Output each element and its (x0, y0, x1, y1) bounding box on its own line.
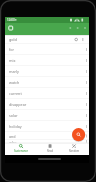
button[interactable] (72, 128, 85, 141)
staticText: and (9, 134, 16, 139)
button[interactable] (7, 26, 15, 34)
staticText: disappear (9, 102, 27, 107)
staticText: marly (9, 69, 19, 74)
staticText: for (9, 47, 15, 52)
staticText: holiday (9, 124, 22, 129)
staticText: Random (69, 149, 80, 153)
button[interactable]: who (5, 140, 89, 143)
staticText: gold (9, 37, 17, 42)
button[interactable]: for (5, 44, 89, 55)
staticText: mix (9, 58, 16, 63)
button[interactable]: Sustenance (8, 143, 34, 155)
button[interactable]: mix (5, 55, 89, 66)
staticText: who (9, 140, 17, 143)
button[interactable]: disappear (5, 99, 89, 110)
staticText: current (9, 91, 22, 96)
staticText: Read (47, 149, 54, 153)
button[interactable]: holiday (5, 121, 89, 132)
button[interactable]: solar (5, 110, 89, 121)
button[interactable]: marly (5, 66, 89, 77)
staticText: 12:00 (7, 18, 15, 22)
button[interactable]: watch (5, 77, 89, 88)
button[interactable]: gold (5, 35, 89, 44)
staticText: Sustenance (14, 149, 29, 153)
button[interactable]: Read (37, 143, 63, 155)
button[interactable]: and (5, 132, 89, 140)
staticText: solar (9, 113, 18, 118)
staticText: watch (9, 80, 20, 85)
button[interactable]: Random (61, 143, 87, 155)
button[interactable]: current (5, 88, 89, 99)
